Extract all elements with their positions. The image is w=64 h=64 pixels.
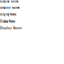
staticText: Display Name	[0, 12, 16, 16]
staticText: Display Name	[0, 26, 22, 30]
staticText: Display Name	[0, 19, 15, 23]
staticText: Display Name	[0, 0, 19, 3]
staticText: Display Name	[0, 6, 20, 9]
